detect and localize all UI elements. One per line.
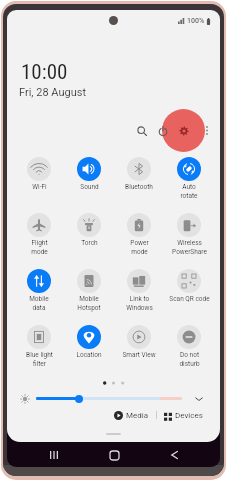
button[interactable]: Wireless PowerShare	[164, 213, 214, 269]
staticText: Smart View	[122, 351, 156, 359]
button[interactable]: Expand	[192, 392, 205, 405]
button[interactable]: Link to Windows	[114, 269, 164, 325]
staticText: Scan QR code	[169, 295, 210, 303]
button[interactable]: Home	[102, 443, 126, 467]
button[interactable]: Settings	[174, 121, 194, 141]
staticText: Do not disturb	[179, 351, 200, 367]
staticText: Wi-Fi	[32, 183, 47, 191]
staticText: Mobile Hotspot	[77, 295, 101, 311]
button[interactable]: Blue light filter	[14, 325, 64, 381]
staticText: Media	[126, 411, 149, 420]
staticText: Torch	[81, 239, 98, 247]
button[interactable]: Mobile data	[14, 269, 64, 325]
staticText: Fri, 28 August	[19, 86, 87, 99]
staticText: Location	[76, 351, 102, 359]
button[interactable]: Do not disturb	[164, 325, 214, 381]
button[interactable]: More options	[199, 123, 214, 138]
button[interactable]: Power	[153, 121, 173, 141]
button[interactable]: Search	[132, 121, 152, 141]
button[interactable]: Devices	[164, 411, 203, 420]
staticText: Mobile data	[29, 295, 49, 311]
staticText: Power mode	[130, 239, 149, 255]
button[interactable]: Brightness	[36, 394, 182, 403]
button[interactable]: Sound	[64, 157, 114, 213]
button[interactable]: Back	[162, 443, 186, 467]
staticText: Sound	[80, 183, 99, 191]
staticText: Wireless PowerShare	[172, 239, 207, 255]
staticText: Flight mode	[31, 239, 48, 255]
button[interactable]: Torch	[64, 213, 114, 269]
button[interactable]: Power mode	[114, 213, 164, 269]
staticText: Link to Windows	[126, 295, 153, 311]
button[interactable]: Flight mode	[14, 213, 64, 269]
button[interactable]: Mobile Hotspot	[64, 269, 114, 325]
button[interactable]: Media	[114, 411, 149, 420]
button[interactable]: Bluetooth	[114, 157, 164, 213]
button[interactable]: Smart View	[114, 325, 164, 381]
staticText: Blue light filter	[26, 351, 53, 367]
button[interactable]: Recents	[42, 443, 66, 467]
staticText: 100%	[187, 17, 205, 25]
button[interactable]: Location	[64, 325, 114, 381]
button[interactable]: Scan QR code	[164, 269, 214, 325]
staticText: Auto rotate	[180, 183, 198, 199]
button[interactable]: Wi-Fi	[14, 157, 64, 213]
staticText: 10:00	[21, 60, 68, 85]
button[interactable]: Auto rotate	[164, 157, 214, 213]
staticText: Devices	[175, 411, 203, 420]
staticText: Bluetooth	[125, 183, 153, 191]
